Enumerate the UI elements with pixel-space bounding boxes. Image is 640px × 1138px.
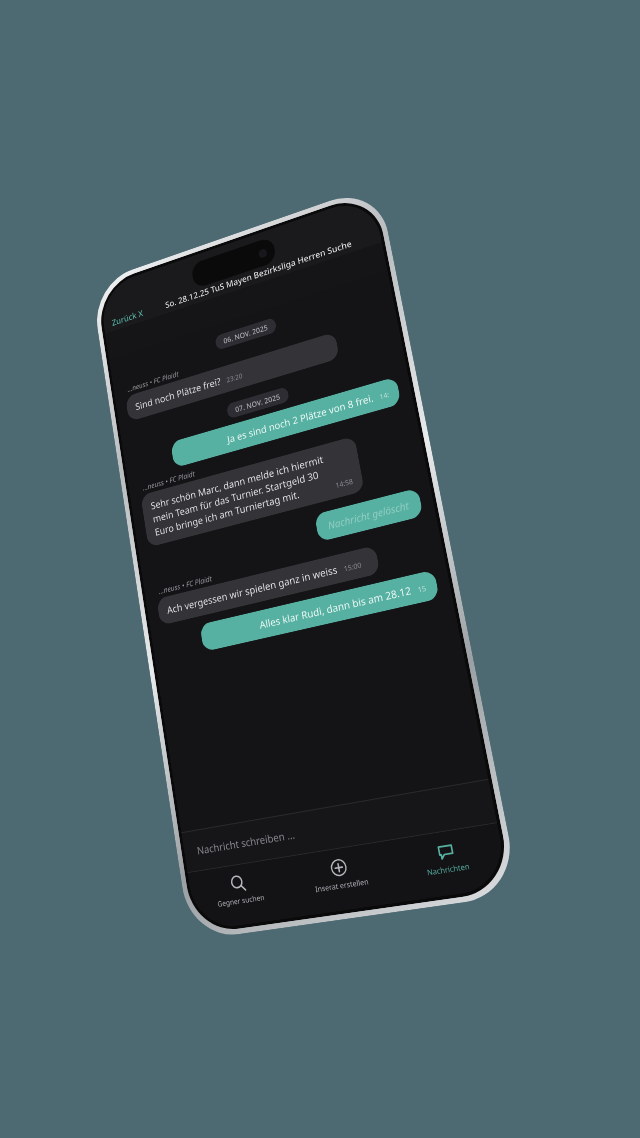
staticText: So. 28.12.25 TuS Mayen Bezirksliga Herre… xyxy=(147,231,372,316)
staticText: Alles klar Rudi, dann bis am 28.12 xyxy=(258,583,413,632)
staticText: 07. NOV. 2025 xyxy=(234,391,281,414)
staticText: Inserat erstellen xyxy=(314,876,370,895)
staticText: Ja es sind noch 2 Plätze von 8 frei. xyxy=(226,391,375,446)
button[interactable]: Ach vergessen wir spielen ganz in weiss xyxy=(156,545,380,626)
staticText: Zurück X xyxy=(111,307,144,328)
button[interactable]: Zurück X xyxy=(111,305,150,331)
staticText: ...neuss • FC Plaidt xyxy=(127,369,179,394)
button[interactable]: Sind noch Plätze frei? xyxy=(125,332,340,422)
staticText: Ach vergessen wir spielen ganz in weiss xyxy=(166,562,339,617)
staticText: Gegner suchen xyxy=(217,892,265,910)
staticText: ...neuss • FC Plaidt xyxy=(158,573,213,596)
button[interactable]: Alles klar Rudi, dann bis am 28.12 xyxy=(199,569,440,652)
button[interactable]: Gegner suchen xyxy=(187,858,294,931)
staticText: 14:58 xyxy=(335,477,354,491)
staticText: Nachricht schreiben ... xyxy=(196,827,296,858)
staticText: Sehr schön Marc, dann melde ich hiermit … xyxy=(150,451,331,539)
staticText: 06. NOV. 2025 xyxy=(223,322,269,346)
staticText: 14: xyxy=(379,390,390,403)
staticText: Sind noch Plätze frei? xyxy=(134,374,222,413)
staticText: Nachricht gelöscht xyxy=(327,498,410,532)
staticText: 15:00 xyxy=(343,560,362,575)
staticText: 15 xyxy=(417,583,428,596)
button[interactable]: Nachricht gelöscht xyxy=(314,488,423,542)
staticText: ...neuss • FC Plaidt xyxy=(142,468,196,492)
button[interactable]: Ja es sind noch 2 Plätze von 8 frei. xyxy=(170,376,401,468)
button[interactable]: Nachricht schreiben ... xyxy=(181,779,497,873)
button[interactable]: Nachrichten xyxy=(387,823,510,902)
button[interactable]: Inserat erstellen xyxy=(284,841,399,917)
staticText: 23:20 xyxy=(226,371,243,385)
button[interactable]: Sehr schön Marc, dann melde ich hiermit … xyxy=(140,436,365,548)
staticText: Nachrichten xyxy=(426,861,471,879)
